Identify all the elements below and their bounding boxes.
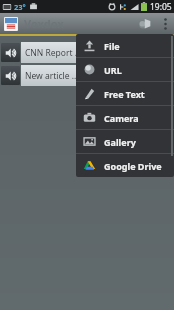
button[interactable]: File <box>76 34 174 57</box>
staticText: File <box>104 40 120 52</box>
button[interactable]: Google Drive <box>76 154 174 177</box>
staticText: 23° <box>14 2 26 12</box>
button[interactable]: Add content <box>132 13 156 34</box>
button[interactable]: Camera <box>76 106 174 129</box>
staticText: Camera <box>104 112 139 124</box>
staticText: New article … <box>25 70 79 82</box>
button[interactable]: CNN Report … <box>0 42 174 63</box>
button[interactable]: Free Text <box>76 82 174 105</box>
button[interactable]: Gallery <box>76 130 174 153</box>
staticText: CNN Report … <box>25 47 82 59</box>
staticText: URL <box>104 64 122 76</box>
button[interactable]: URL <box>76 58 174 81</box>
staticText: Voxdox <box>24 16 64 31</box>
staticText: 19:05 <box>150 1 172 13</box>
staticText: Gallery <box>104 136 136 148</box>
button[interactable]: More options <box>156 13 174 34</box>
staticText: Google Drive <box>104 160 162 172</box>
button[interactable]: App logo <box>4 17 18 31</box>
button[interactable]: New article … <box>0 65 174 86</box>
staticText: Free Text <box>104 88 145 100</box>
